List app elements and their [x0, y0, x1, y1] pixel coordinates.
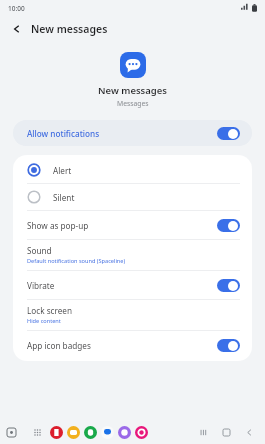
button[interactable]	[217, 127, 240, 140]
staticText: Allow notifications	[27, 128, 100, 139]
button[interactable]: Recents	[196, 425, 210, 439]
button[interactable]: App	[101, 426, 114, 439]
button[interactable]	[217, 219, 240, 232]
button[interactable]: Sound	[13, 240, 252, 270]
button[interactable]: Silent	[13, 184, 252, 210]
staticText: App icon badges	[27, 340, 91, 351]
button[interactable]: Back	[242, 425, 256, 439]
button[interactable]: Vibrate	[13, 271, 252, 299]
button[interactable]: Apps	[32, 427, 43, 438]
staticText: Sound	[27, 245, 52, 256]
button[interactable]: Alert	[13, 157, 252, 183]
button[interactable]	[217, 339, 240, 352]
button[interactable]: Allow notifications	[13, 120, 252, 146]
staticText: New messages	[98, 84, 168, 97]
staticText: Hide content	[27, 317, 61, 325]
button[interactable]: Home	[219, 425, 233, 439]
staticText: New messages	[31, 22, 108, 36]
button[interactable]: Lock screen	[13, 300, 252, 330]
button[interactable]: App icon badges	[13, 331, 252, 359]
staticText: Lock screen	[27, 305, 73, 316]
button[interactable]: Back	[8, 20, 26, 38]
staticText: Show as pop-up	[27, 220, 89, 231]
staticText: 10:00	[8, 4, 25, 13]
staticText: Vibrate	[27, 280, 55, 291]
button[interactable]: Assistant	[6, 427, 17, 438]
button[interactable]: App	[67, 426, 80, 439]
button[interactable]: App	[135, 426, 148, 439]
button[interactable]	[217, 279, 240, 292]
staticText: Alert	[53, 165, 72, 176]
button[interactable]: App	[118, 426, 131, 439]
button[interactable]: App	[50, 426, 63, 439]
staticText: Silent	[53, 192, 75, 203]
button[interactable]: App	[84, 426, 97, 439]
staticText: Messages	[117, 99, 149, 108]
staticText: Default notification sound (Spaceline)	[27, 257, 126, 265]
button[interactable]: Show as pop-up	[13, 211, 252, 239]
